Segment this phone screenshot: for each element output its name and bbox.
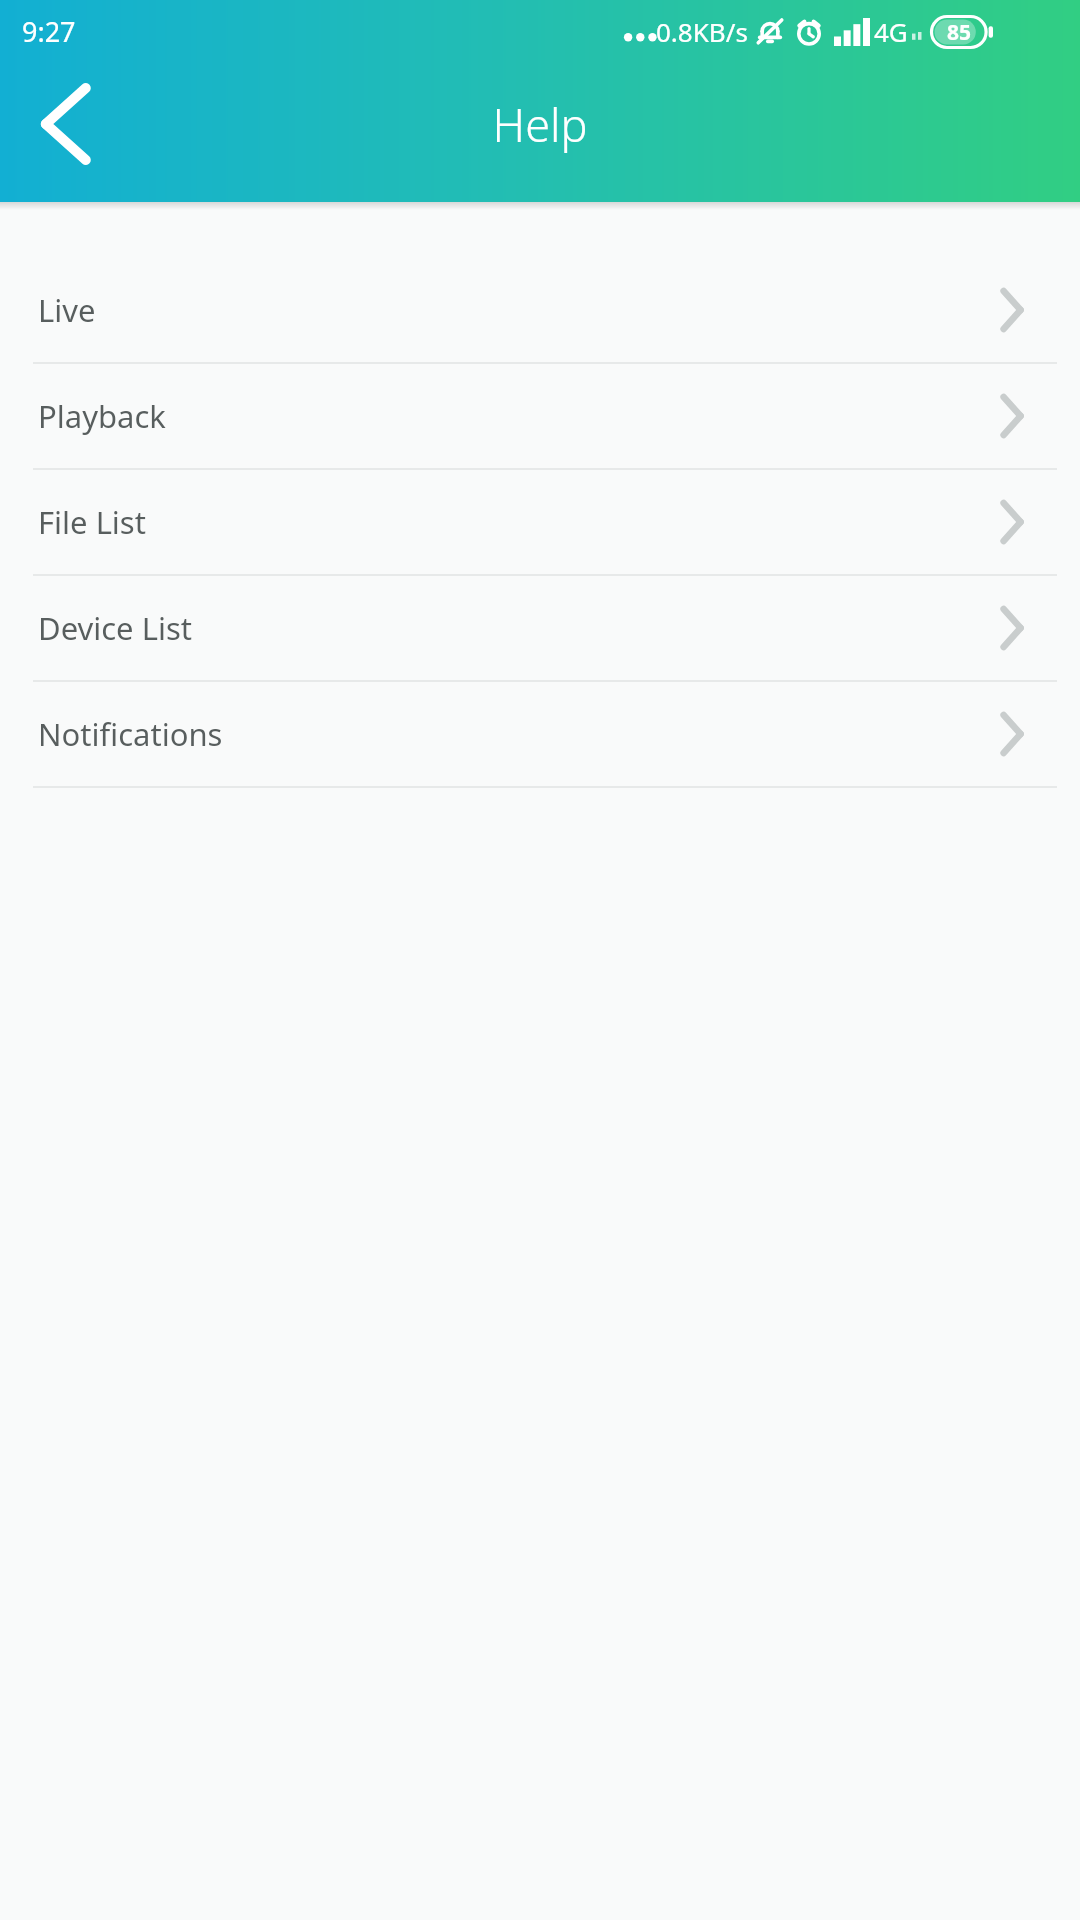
button[interactable]: Back <box>0 69 110 179</box>
button[interactable]: Notifications <box>0 682 1080 786</box>
button[interactable]: Device List <box>0 576 1080 680</box>
staticText: Help <box>0 94 1080 155</box>
button[interactable]: Live <box>0 258 1080 362</box>
button[interactable]: Playback <box>0 364 1080 468</box>
staticText: File List <box>38 501 146 543</box>
staticText: 4G <box>874 14 908 49</box>
staticText: 9:27 <box>22 13 76 50</box>
staticText: Notifications <box>38 713 223 755</box>
staticText: 0.8KB/s <box>656 14 748 49</box>
button[interactable]: File List <box>0 470 1080 574</box>
staticText: Live <box>38 289 96 331</box>
staticText: Playback <box>38 395 166 437</box>
staticText: 85 <box>947 18 972 47</box>
staticText: Device List <box>38 607 192 649</box>
